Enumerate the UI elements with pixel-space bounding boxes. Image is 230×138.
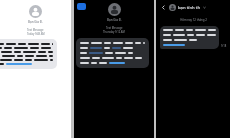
staticText: 9:18 xyxy=(221,44,227,48)
button[interactable] xyxy=(160,26,219,49)
button[interactable]: Back xyxy=(77,3,86,10)
staticText: Today 9:48 AM xyxy=(27,32,45,36)
staticText: Thursday 9:12 AM xyxy=(103,30,125,34)
staticText: Bạn Gia Đ. xyxy=(107,18,122,22)
staticText: Bạn Gia Đ. xyxy=(28,20,43,24)
button[interactable]: Back xyxy=(159,3,167,11)
button[interactable] xyxy=(0,39,57,69)
staticText: bạn tính th xyxy=(178,5,201,11)
button[interactable] xyxy=(76,38,149,68)
staticText: Text Message xyxy=(27,28,44,32)
staticText: Hôm nay 12 tháng 2 xyxy=(180,18,207,22)
button[interactable]: bạn tính th xyxy=(169,4,206,11)
staticText: Text Message xyxy=(106,26,123,30)
